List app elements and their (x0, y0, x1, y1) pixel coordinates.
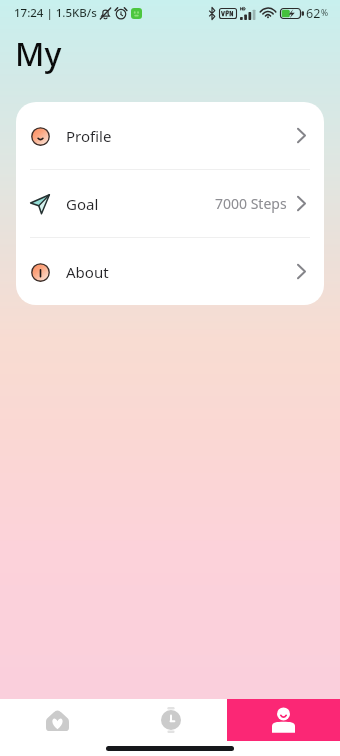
button[interactable]: Home (0, 699, 114, 741)
staticText: Goal (66, 194, 99, 214)
staticText: About (66, 262, 109, 282)
staticText: 62 (306, 5, 321, 22)
staticText: 17:24 | 1.5KB/s (14, 5, 97, 21)
button[interactable]: Profile (16, 102, 324, 169)
button[interactable]: Goal (16, 170, 324, 237)
button[interactable]: About (16, 238, 324, 305)
staticText: % (321, 7, 329, 19)
button[interactable]: Profile (227, 699, 340, 741)
button[interactable]: Timer (114, 699, 227, 741)
staticText: Profile (66, 126, 112, 146)
staticText: My (15, 32, 62, 76)
staticText: 7000 Steps (215, 194, 287, 213)
